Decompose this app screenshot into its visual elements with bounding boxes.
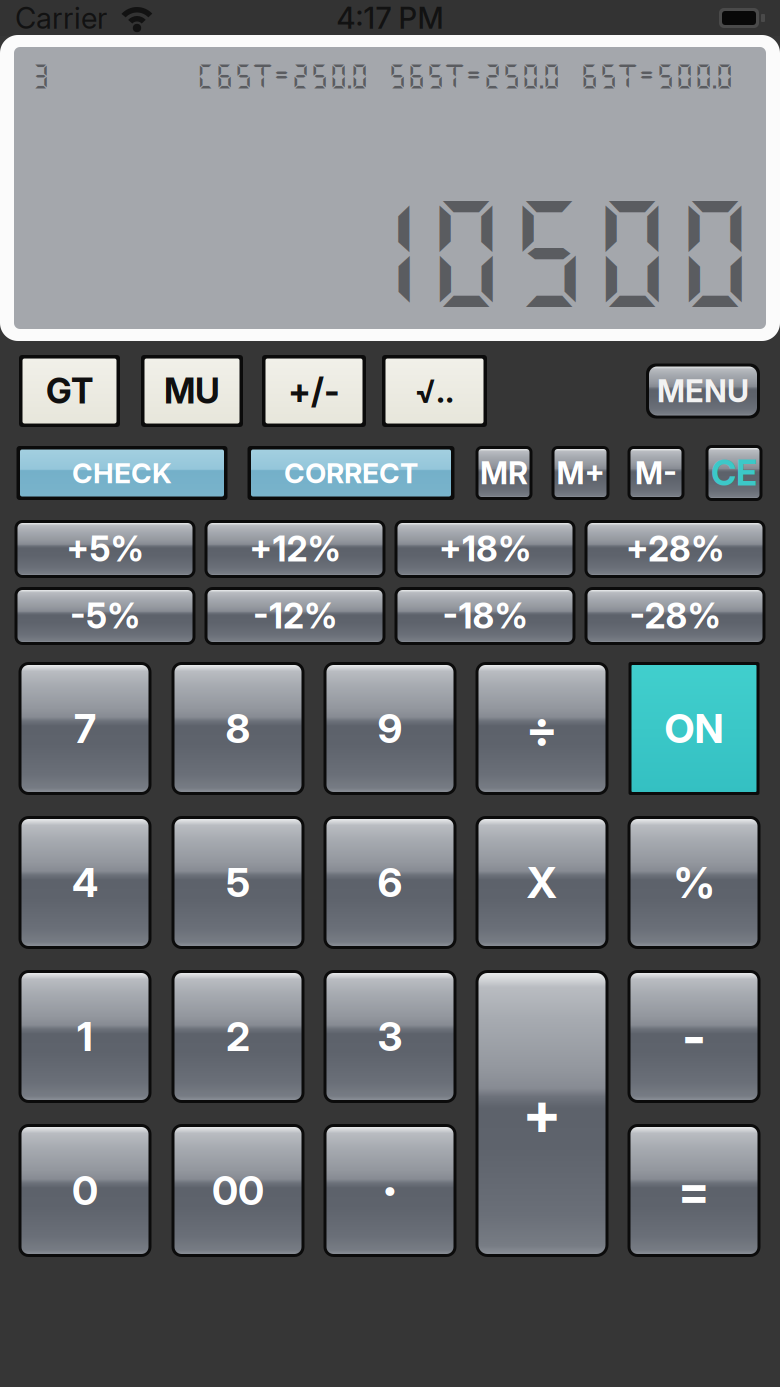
button[interactable]: M+: [551, 446, 609, 500]
button[interactable]: %: [627, 816, 760, 949]
staticText: +5%: [66, 528, 143, 570]
staticText: 9: [377, 704, 402, 753]
button[interactable]: 7: [18, 662, 151, 795]
button[interactable]: 8: [171, 662, 304, 795]
button[interactable]: MENU: [646, 363, 760, 418]
staticText: 2: [226, 1012, 250, 1061]
button[interactable]: -12%: [204, 587, 385, 645]
staticText: 5: [226, 858, 250, 907]
staticText: ·: [381, 1158, 399, 1223]
button[interactable]: 3: [323, 970, 456, 1103]
staticText: CORRECT: [284, 456, 418, 490]
button[interactable]: MR: [475, 446, 532, 500]
staticText: 4:17 PM: [336, 0, 443, 36]
button[interactable]: CE: [705, 445, 762, 501]
button[interactable]: 5: [171, 816, 304, 949]
staticText: 1: [77, 1012, 93, 1061]
staticText: +28%: [626, 528, 724, 570]
staticText: -28%: [629, 595, 720, 637]
staticText: GT: [46, 370, 93, 412]
button[interactable]: CORRECT: [247, 446, 454, 500]
button[interactable]: ON: [628, 662, 759, 795]
staticText: 4: [72, 858, 98, 907]
button[interactable]: M-: [627, 446, 684, 500]
button[interactable]: 6: [323, 816, 456, 949]
staticText: ON: [664, 704, 723, 753]
staticText: -12%: [253, 595, 337, 637]
button[interactable]: +18%: [394, 520, 575, 578]
staticText: 7: [74, 704, 96, 753]
button[interactable]: 1: [18, 970, 151, 1103]
staticText: 0: [72, 1166, 98, 1215]
staticText: CE: [711, 452, 757, 494]
staticText: MENU: [657, 372, 749, 409]
button[interactable]: ·: [323, 1124, 456, 1257]
staticText: √‥: [415, 372, 454, 410]
staticText: -5%: [70, 595, 140, 637]
staticText: Carrier: [15, 0, 107, 36]
staticText: +: [522, 1078, 562, 1149]
staticText: 8: [225, 704, 250, 753]
button[interactable]: +: [475, 970, 608, 1257]
button[interactable]: +28%: [584, 520, 765, 578]
button[interactable]: 4: [18, 816, 151, 949]
button[interactable]: -: [627, 970, 760, 1103]
button[interactable]: GT: [19, 355, 120, 427]
staticText: M-: [635, 454, 677, 491]
button[interactable]: =: [627, 1124, 760, 1257]
staticText: +12%: [249, 528, 340, 570]
staticText: %: [672, 857, 715, 908]
button[interactable]: +/-: [262, 355, 366, 427]
staticText: =: [677, 1161, 710, 1220]
staticText: -: [681, 1004, 706, 1069]
button[interactable]: 9: [323, 662, 456, 795]
button[interactable]: 2: [171, 970, 304, 1103]
button[interactable]: ÷: [475, 662, 608, 795]
button[interactable]: -18%: [394, 587, 575, 645]
staticText: -18%: [442, 595, 527, 637]
button[interactable]: +12%: [204, 520, 385, 578]
staticText: 3: [31, 60, 50, 91]
button[interactable]: 00: [171, 1124, 304, 1257]
staticText: +/-: [288, 370, 340, 412]
button[interactable]: √‥: [382, 355, 487, 427]
staticText: 3: [377, 1012, 402, 1061]
staticText: ÷: [525, 699, 558, 758]
button[interactable]: 0: [18, 1124, 151, 1257]
staticText: M+: [556, 454, 604, 491]
staticText: MU: [164, 370, 220, 412]
staticText: CGST=250.0 SGST=250.0 GST=500.0: [196, 60, 734, 91]
staticText: CHECK: [72, 456, 172, 490]
button[interactable]: +5%: [14, 520, 195, 578]
staticText: 10500: [341, 184, 756, 318]
staticText: X: [526, 857, 558, 908]
button[interactable]: X: [475, 816, 608, 949]
button[interactable]: -5%: [14, 587, 195, 645]
staticText: +18%: [439, 528, 531, 570]
staticText: 6: [377, 858, 402, 907]
button[interactable]: CHECK: [16, 446, 227, 500]
staticText: 00: [212, 1166, 264, 1215]
button[interactable]: MU: [141, 355, 243, 427]
staticText: MR: [480, 454, 528, 491]
button[interactable]: -28%: [584, 587, 765, 645]
